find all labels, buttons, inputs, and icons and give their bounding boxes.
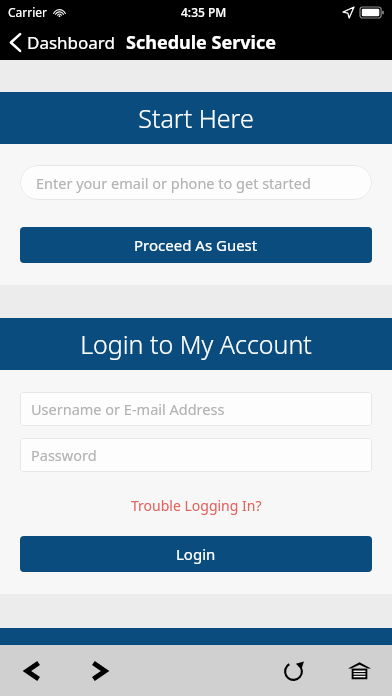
staticText: Dashboard: [27, 31, 116, 54]
staticText: Password: [31, 445, 97, 465]
staticText: Login: [176, 544, 216, 564]
staticText: Carrier: [8, 4, 48, 20]
staticText: Trouble Logging In?: [131, 496, 262, 515]
button[interactable]: Password: [20, 438, 372, 472]
button[interactable]: Login: [20, 536, 372, 572]
staticText: Username or E-mail Address: [31, 399, 225, 419]
staticText: Enter your email or phone to get started: [36, 173, 311, 193]
staticText: Proceed As Guest: [134, 235, 258, 255]
button[interactable]: Dashboard: [0, 27, 122, 58]
button[interactable]: Proceed As Guest: [20, 227, 372, 263]
button[interactable]: Username or E-mail Address: [20, 392, 372, 426]
button[interactable]: Reload: [260, 645, 326, 696]
button[interactable]: Back: [0, 645, 66, 696]
button[interactable]: Garage: [326, 645, 392, 696]
button[interactable]: Trouble Logging In?: [0, 494, 392, 517]
button[interactable]: Enter your email or phone to get started: [20, 165, 372, 200]
button[interactable]: Forward: [66, 645, 132, 696]
staticText: Login to My Account: [80, 327, 312, 361]
staticText: 4:35 PM: [181, 4, 227, 20]
staticText: Start Here: [138, 101, 254, 135]
staticText: Schedule Service: [126, 30, 276, 55]
